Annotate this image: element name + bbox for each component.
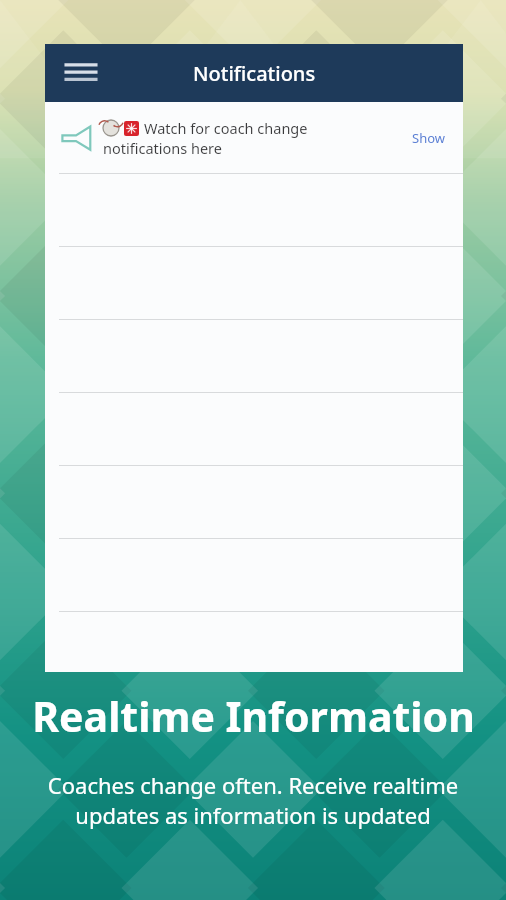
staticText: Notifications [193, 60, 316, 87]
button[interactable]: Show [404, 123, 453, 153]
staticText: Realtime Information [32, 688, 475, 744]
staticText: Show [412, 129, 445, 147]
button[interactable]: Open navigation menu [59, 51, 103, 95]
staticText: Coaches change often. Receive realtime u… [10, 770, 496, 831]
staticText: Watch for coach change [144, 118, 308, 138]
button[interactable]: Watch for coach change [45, 102, 463, 173]
staticText: notifications here [103, 138, 222, 158]
